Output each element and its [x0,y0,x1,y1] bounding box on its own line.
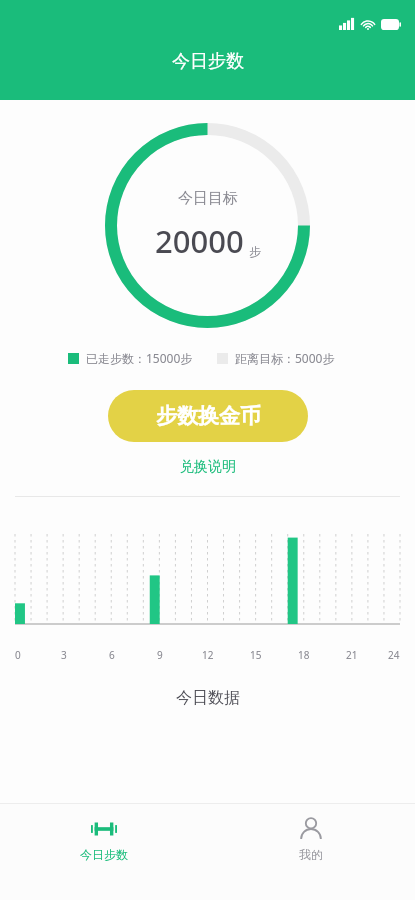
staticText: 6 [109,648,115,662]
staticText: 兑换说明 [180,458,236,476]
other: 我的 [298,816,324,842]
staticText: 今日步数 [80,847,128,862]
button[interactable]: 我的 [207,804,415,900]
staticText: 3 [61,648,67,662]
staticText: 步 [249,244,261,259]
staticText: 20000 [155,220,244,262]
staticText: 24 [388,648,400,662]
staticText: 15 [250,648,262,662]
staticText: 距离目标：5000步 [235,350,335,366]
staticText: 9 [157,648,163,662]
staticText: 今日步数 [172,50,244,73]
staticText: 我的 [299,847,323,862]
staticText: 今日数据 [176,688,240,708]
button[interactable]: 今日步数 [0,804,207,900]
staticText: 今日目标 [178,189,238,208]
staticText: 已走步数：15000步 [86,350,193,366]
staticText: 12 [202,648,214,662]
button[interactable]: 步数换金币 [108,390,308,442]
button[interactable]: 兑换说明 [172,456,244,478]
staticText: 21 [346,648,358,662]
staticText: 步数换金币 [156,403,261,429]
staticText: 0 [15,648,21,662]
staticText: 18 [298,648,310,662]
